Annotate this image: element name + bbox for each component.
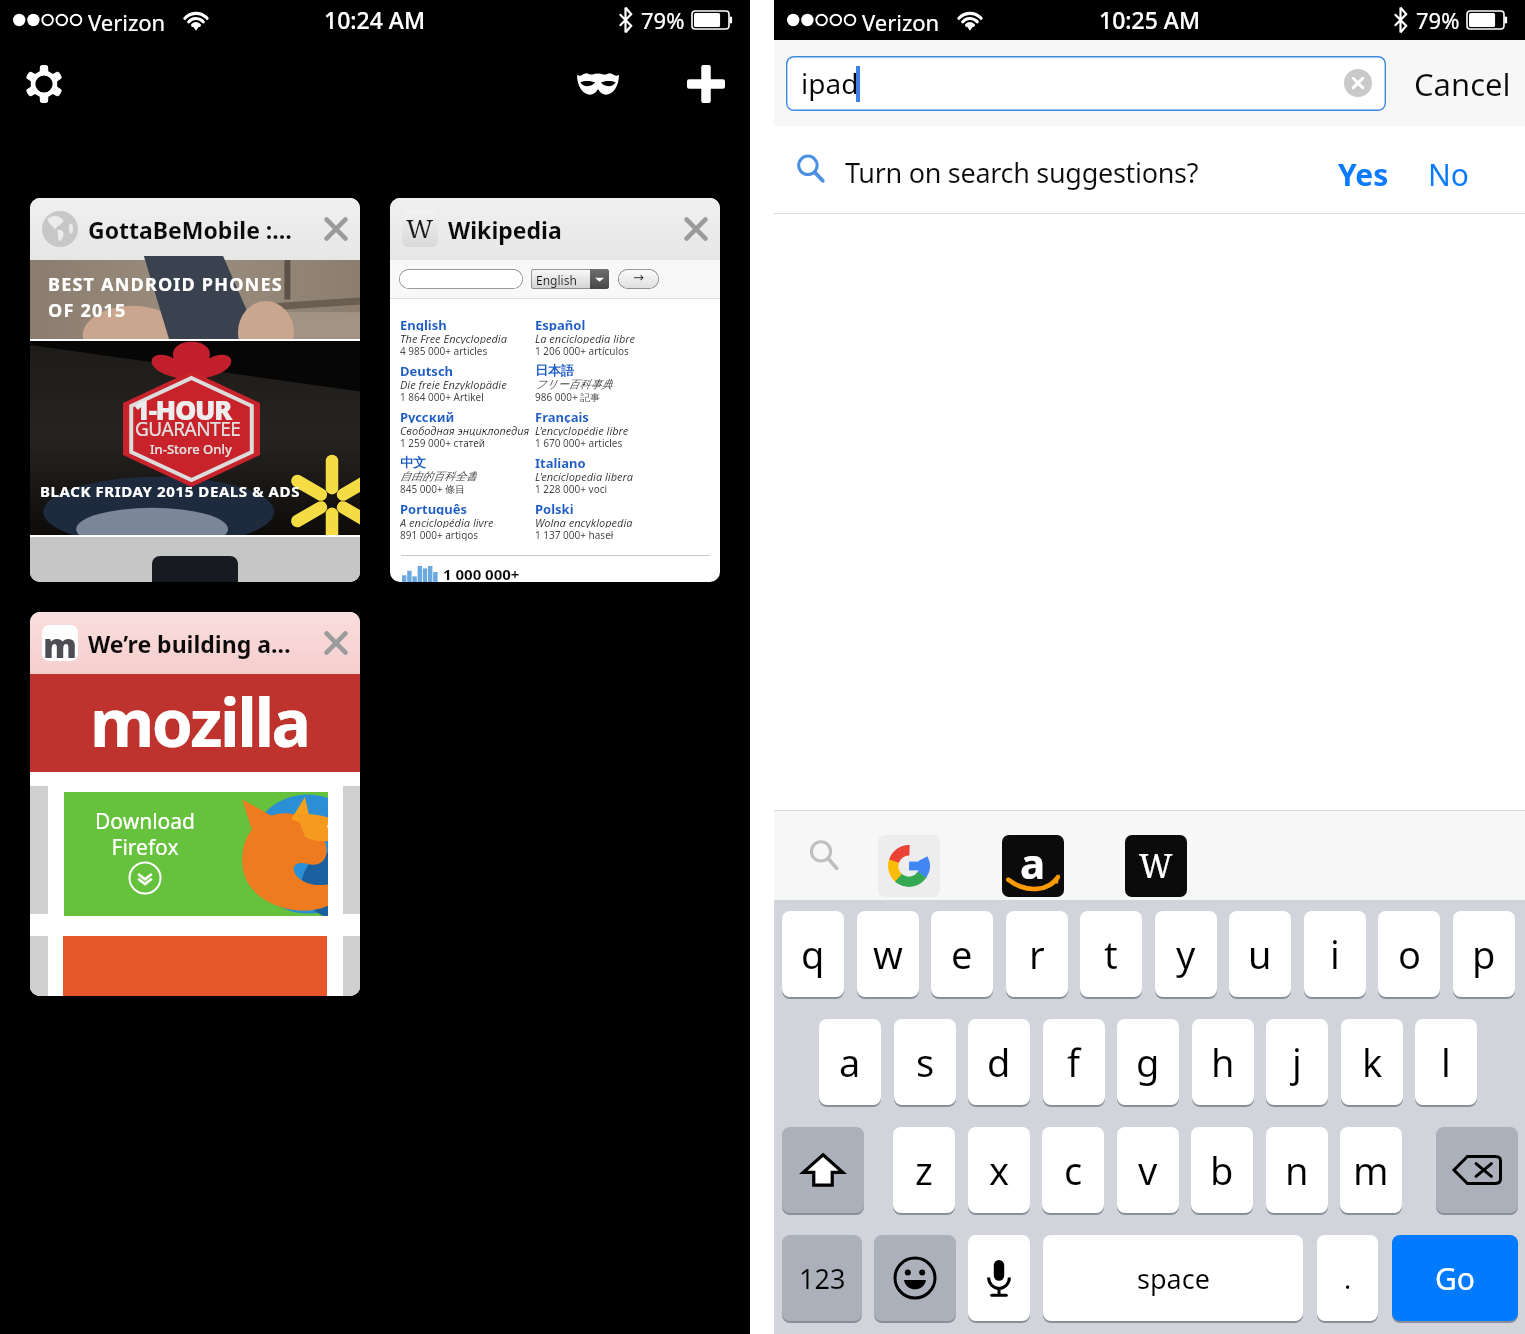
button[interactable]: v [1117, 1127, 1179, 1213]
staticText: x [989, 1144, 1010, 1196]
button[interactable]: Settings [11, 51, 77, 117]
staticText: 1 670 000+ articles [535, 436, 623, 449]
button[interactable]: New tab [672, 50, 740, 118]
button[interactable]: r [1006, 911, 1068, 997]
button[interactable]: h [1192, 1019, 1254, 1105]
button[interactable]: Close tab [319, 626, 353, 660]
staticText: k [1362, 1036, 1383, 1088]
staticText: English [400, 316, 447, 331]
button[interactable]: x [968, 1127, 1030, 1213]
staticText: 1 206 000+ artículos [535, 344, 629, 357]
button[interactable]: s [894, 1019, 956, 1105]
staticText: s [916, 1036, 935, 1088]
button[interactable]: n [1266, 1127, 1328, 1213]
staticText: GUARANTEE [135, 416, 241, 442]
button[interactable]: c [1042, 1127, 1104, 1213]
staticText: 986 000+ 記事 [535, 390, 601, 403]
button[interactable]: No [1428, 154, 1469, 195]
staticText: Go [1435, 1258, 1475, 1299]
button[interactable]: k [1341, 1019, 1403, 1105]
button[interactable]: Go [1392, 1235, 1518, 1321]
staticText: 日本語 [535, 362, 574, 377]
button[interactable]: Emoji [874, 1235, 956, 1321]
button[interactable]: d [968, 1019, 1030, 1105]
staticText: 1 259 000+ статей [400, 436, 485, 449]
button[interactable]: l [1415, 1019, 1477, 1105]
staticText: u [1248, 928, 1272, 980]
button[interactable]: g [1117, 1019, 1179, 1105]
staticText: Cancel [1414, 63, 1511, 105]
staticText: 1 864 000+ Artikel [400, 390, 484, 403]
button[interactable]: m [30, 612, 360, 996]
button[interactable]: t [1080, 911, 1142, 997]
staticText: Download Firefox [94, 807, 196, 861]
button[interactable]: e [931, 911, 993, 997]
staticText: Deutsch [400, 362, 454, 377]
staticText: . [1344, 1260, 1352, 1297]
button[interactable]: i [1304, 911, 1366, 997]
staticText: L'encyclopédie libre [535, 423, 629, 436]
staticText: 79% [641, 5, 685, 35]
button[interactable]: Yes [1338, 154, 1389, 195]
button[interactable]: 123 [782, 1235, 862, 1321]
button[interactable]: m [1340, 1127, 1402, 1213]
staticText: L'enciclopedia libera [535, 469, 633, 482]
button[interactable]: GottaBeMobile :… [30, 198, 360, 582]
button[interactable]: Private browsing [566, 60, 630, 108]
staticText: Turn on search suggestions? [845, 154, 1199, 191]
staticText: 1 000 000+ [443, 564, 520, 582]
button[interactable]: Wikipedia [1125, 835, 1187, 897]
staticText: Verizon [862, 7, 940, 37]
button[interactable]: Google [878, 835, 940, 897]
button[interactable]: space [1043, 1235, 1303, 1321]
button[interactable]: W [390, 198, 720, 582]
staticText: W [1139, 844, 1173, 888]
staticText: BLACK FRIDAY 2015 DEALS & ADS [40, 481, 300, 501]
button[interactable]: . [1317, 1235, 1378, 1321]
staticText: Français [535, 408, 589, 423]
button[interactable]: Clear text [1344, 69, 1372, 97]
staticText: z [915, 1144, 933, 1196]
button[interactable]: u [1229, 911, 1291, 997]
staticText: 中文 [400, 454, 426, 469]
button[interactable]: Search [794, 825, 854, 885]
staticText: v [1138, 1144, 1158, 1196]
button[interactable]: o [1378, 911, 1440, 997]
button[interactable]: ipad [786, 56, 1386, 111]
staticText: i [1330, 928, 1340, 980]
button[interactable]: Backspace [1436, 1127, 1518, 1213]
staticText: h [1211, 1036, 1235, 1088]
button[interactable]: Shift [782, 1127, 864, 1213]
button[interactable]: Dictation [968, 1235, 1030, 1321]
button[interactable]: Amazon [1002, 835, 1064, 897]
button[interactable]: p [1453, 911, 1515, 997]
staticText: 4 985 000+ articles [400, 344, 488, 357]
button[interactable]: j [1266, 1019, 1328, 1105]
button[interactable]: Close tab [679, 212, 713, 246]
button[interactable]: w [857, 911, 919, 997]
staticText: a [1020, 835, 1046, 891]
staticText: Polski [535, 500, 574, 515]
button[interactable]: a [819, 1019, 881, 1105]
staticText: m [43, 625, 77, 658]
button[interactable]: z [893, 1127, 955, 1213]
staticText: w [873, 928, 903, 980]
staticText: o [1398, 928, 1421, 980]
staticText: 10:25 AM [1099, 4, 1201, 35]
button[interactable]: Cancel [1414, 63, 1511, 105]
staticText: W [406, 211, 434, 245]
button[interactable]: q [782, 911, 844, 997]
staticText: La enciclopedia libre [535, 331, 635, 344]
staticText: GottaBeMobile :… [88, 214, 310, 245]
button[interactable]: f [1043, 1019, 1105, 1105]
button[interactable]: Close tab [319, 212, 353, 246]
staticText: r [1029, 928, 1045, 980]
staticText: Español [535, 316, 586, 331]
staticText: 1 137 000+ haseł [535, 528, 614, 541]
staticText: 10:24 AM [324, 4, 426, 35]
staticText: Die freie Enzyklopädie [400, 377, 507, 390]
button[interactable]: y [1155, 911, 1217, 997]
staticText: 79% [1416, 5, 1460, 35]
button[interactable]: b [1191, 1127, 1253, 1213]
staticText: 123 [799, 1260, 846, 1297]
